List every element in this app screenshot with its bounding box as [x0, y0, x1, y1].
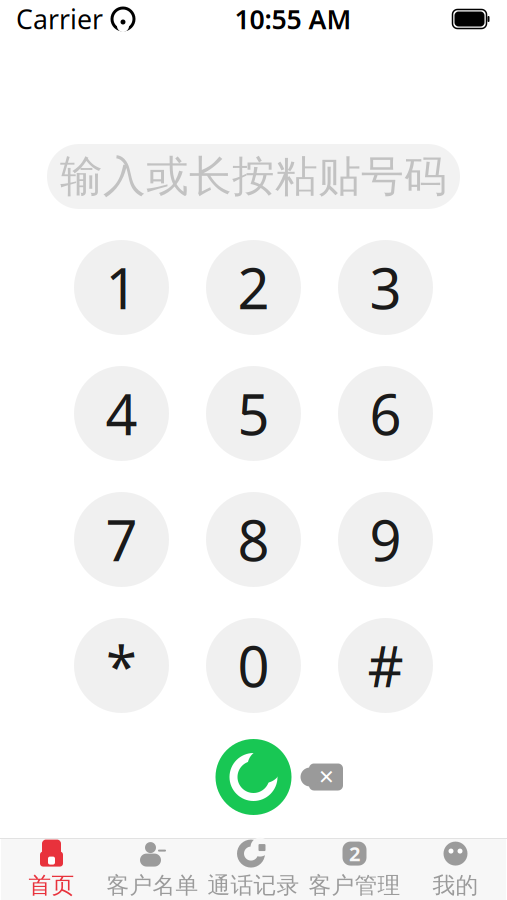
button[interactable]: 9	[338, 492, 433, 587]
button[interactable]: 6	[338, 366, 433, 461]
button[interactable]: 4	[74, 366, 169, 461]
staticText: 通话记录	[207, 872, 299, 899]
staticText: 10:55 AM	[234, 1, 351, 37]
staticText: 0	[237, 628, 269, 703]
staticText: 客户名单	[106, 872, 198, 899]
staticText: ✕	[318, 766, 335, 788]
button[interactable]: #	[338, 618, 433, 713]
staticText: 4	[105, 376, 137, 451]
button[interactable]: 5	[206, 366, 301, 461]
staticText: 5	[237, 376, 269, 451]
button[interactable]: *	[74, 618, 169, 713]
staticText: 9	[369, 502, 401, 577]
staticText: #	[367, 628, 403, 703]
button[interactable]: 7	[74, 492, 169, 587]
button[interactable]: 2	[206, 240, 301, 335]
button[interactable]: 3	[338, 240, 433, 335]
staticText: 6	[369, 376, 401, 451]
button[interactable]: 删除	[300, 762, 344, 792]
button[interactable]: 客户名单	[102, 839, 203, 900]
staticText: 客户管理	[308, 872, 400, 899]
staticText: 2	[349, 840, 360, 867]
staticText: 8	[237, 502, 269, 577]
staticText: 7	[105, 502, 137, 577]
staticText: Carrier	[16, 1, 103, 37]
button[interactable]: 通话记录	[203, 839, 304, 900]
staticText: 3	[369, 250, 401, 325]
staticText: 我的	[432, 872, 478, 899]
button[interactable]: 1	[74, 240, 169, 335]
button[interactable]: 首页	[1, 839, 102, 900]
staticText: *	[106, 628, 137, 703]
button[interactable]: 输入或长按粘贴号码	[47, 144, 460, 209]
button[interactable]: 8	[206, 492, 301, 587]
button[interactable]: 2	[304, 839, 405, 900]
button[interactable]: 我的	[405, 839, 506, 900]
staticText: 2	[237, 250, 269, 325]
staticText: 1	[105, 250, 137, 325]
button[interactable]: 拨号	[215, 739, 291, 815]
staticText: 首页	[28, 872, 74, 899]
button[interactable]: 0	[206, 618, 301, 713]
staticText: 输入或长按粘贴号码	[60, 150, 447, 203]
